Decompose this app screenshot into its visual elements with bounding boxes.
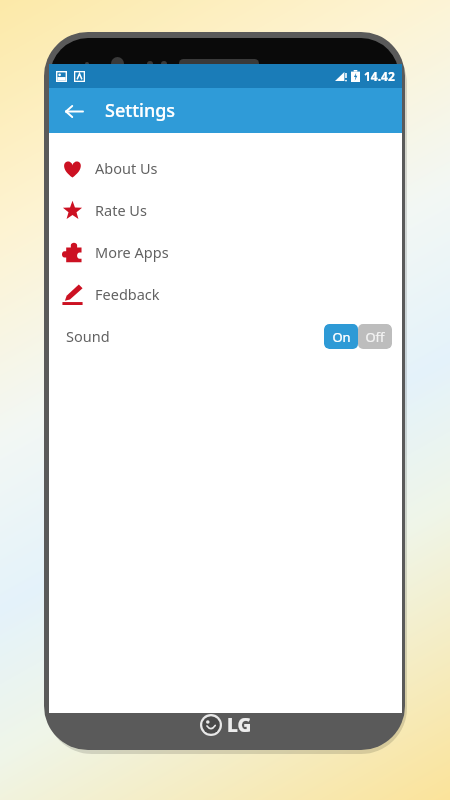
button[interactable]: On [324,324,358,349]
staticText: LG [227,712,252,738]
staticText: More Apps [95,242,169,262]
button[interactable]: Back [55,92,93,130]
staticText: Off [365,328,385,346]
button[interactable]: About Us [49,147,402,189]
button[interactable]: Rate Us [49,189,402,231]
staticText: 14.42 [364,68,395,84]
staticText: Settings [105,98,176,123]
button[interactable]: More Apps [49,231,402,273]
button[interactable]: Off [358,324,392,349]
staticText: Sound [66,326,110,346]
staticText: Feedback [95,284,160,304]
staticText: About Us [95,158,158,178]
staticText: On [332,328,351,346]
button[interactable]: Feedback [49,273,402,315]
staticText: Rate Us [95,200,147,220]
